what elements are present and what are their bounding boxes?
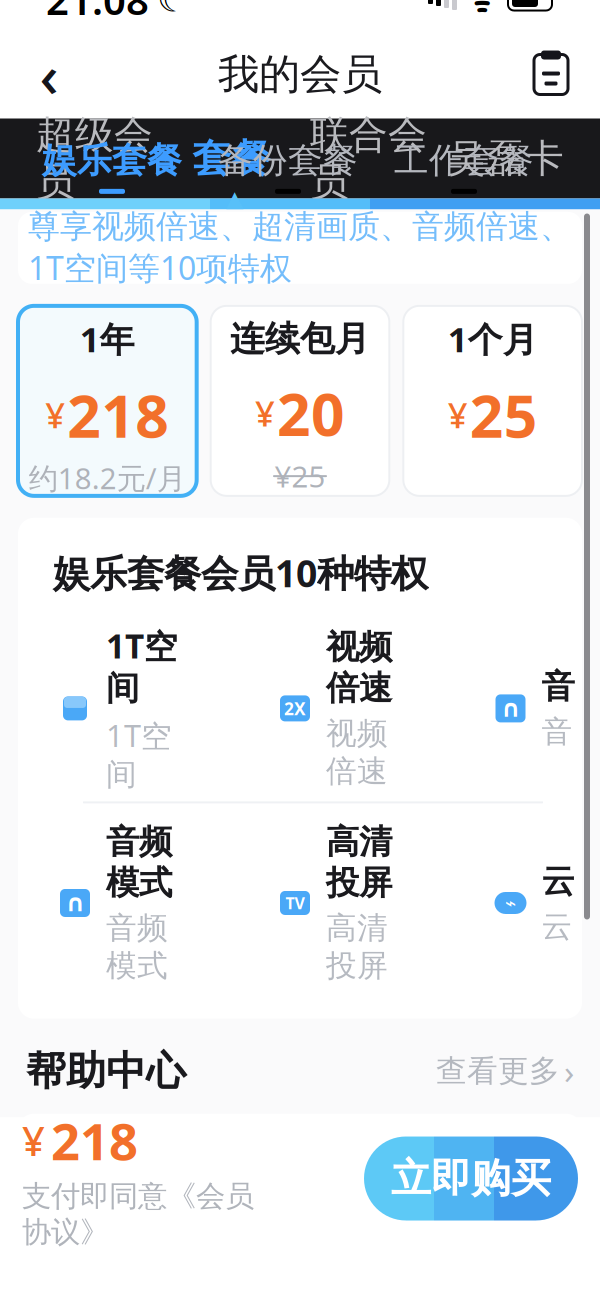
staticText: ¥ [448, 392, 468, 438]
staticText: 约18.2元/月 [29, 458, 186, 497]
button[interactable]: 套餐 [163, 118, 300, 198]
button[interactable]: 工作套餐 [376, 139, 552, 194]
staticText: TV [285, 892, 304, 914]
button[interactable]: 联合会员 [300, 118, 437, 198]
staticText: › [564, 1049, 574, 1093]
staticText: 云 [541, 908, 572, 945]
staticText: 音 [541, 713, 572, 751]
staticText: ¥25 [274, 457, 325, 496]
staticText: 1T空间 [106, 623, 177, 709]
button[interactable]: 1T空间 [58, 623, 278, 793]
button[interactable]: 查看更多 [436, 1049, 574, 1093]
staticText: 音频模式 [106, 909, 168, 985]
button[interactable]: ∩ [493, 666, 600, 751]
button[interactable]: ? [18, 1114, 582, 1214]
button[interactable]: 吴磊卡 [437, 118, 574, 198]
staticText: 娱乐套餐会员10种特权 [53, 548, 428, 597]
button[interactable]: 支付即同意《会员协议》 [22, 1178, 254, 1250]
staticText: ¥ [45, 392, 65, 438]
button[interactable]: 1个月 [403, 306, 582, 496]
staticText: 娱乐套餐 [42, 139, 182, 182]
staticText: 视频倍速 [326, 715, 388, 790]
staticText: 尊享视频倍速、超清画质、音频倍速、1T空间等10项特权 [28, 207, 572, 289]
button[interactable]: ⌁ [493, 861, 600, 945]
staticText: ¥ [22, 1114, 45, 1167]
staticText: 2X [284, 697, 306, 720]
staticText: ▲ [226, 186, 243, 212]
staticText: 1T空间 [106, 715, 172, 793]
button[interactable]: Orders [520, 43, 582, 105]
staticText: 1年 [80, 316, 135, 362]
staticText: ¥ [255, 390, 275, 436]
staticText: 支付即同意《会员协议》 [22, 1178, 254, 1250]
staticText: 音频模式 [106, 821, 172, 903]
staticText: ⌁ [505, 892, 516, 914]
button[interactable]: Back [18, 43, 80, 105]
staticText: 同时购买超级会员和套餐，时间如何计算? [88, 1118, 520, 1210]
staticText: 高清投屏 [326, 821, 392, 903]
staticText: ᯤ [467, 0, 496, 21]
staticText: 视频倍速 [326, 627, 392, 709]
staticText: 218 [67, 376, 169, 454]
staticText: 1个月 [448, 316, 538, 362]
staticText: 高清投屏 [326, 909, 388, 985]
staticText: 25 [470, 376, 538, 454]
staticText: ? [51, 1147, 63, 1180]
button[interactable]: 1年 [18, 306, 197, 496]
staticText: 20 [277, 374, 345, 452]
staticText: 套餐 [192, 135, 270, 182]
staticText: ☾ [157, 0, 188, 19]
button[interactable]: 2X [278, 627, 498, 790]
button[interactable]: 娱乐套餐 [24, 139, 200, 194]
staticText: 21:08 [46, 0, 149, 26]
staticText: 超级会员 [36, 111, 153, 206]
staticText: 我的会员 [218, 49, 382, 100]
staticText: 查看更多 [436, 1052, 560, 1090]
staticText: 吴磊卡 [447, 135, 564, 182]
staticText: 音 [541, 666, 574, 707]
button[interactable]: 连续包月 [211, 306, 389, 496]
staticText: 备份套餐 [218, 139, 358, 182]
staticText: ∩ [501, 695, 520, 722]
staticText: 连续包月 [230, 318, 370, 360]
button[interactable]: 超级会员 [26, 118, 163, 198]
staticText: 工作套餐 [394, 139, 534, 182]
staticText: ‹ [39, 35, 58, 113]
button[interactable]: 立即购买 [364, 1136, 578, 1220]
button[interactable]: ∩ [58, 821, 278, 985]
staticText: 联合会员 [310, 111, 427, 206]
button[interactable]: 备份套餐 [200, 139, 376, 194]
staticText: 云 [541, 861, 574, 902]
staticText: 立即购买 [391, 1154, 551, 1203]
staticText: 218 [51, 1107, 138, 1174]
staticText: ∩ [65, 889, 84, 917]
staticText: 帮助中心 [26, 1047, 186, 1096]
button[interactable]: TV [278, 821, 498, 985]
